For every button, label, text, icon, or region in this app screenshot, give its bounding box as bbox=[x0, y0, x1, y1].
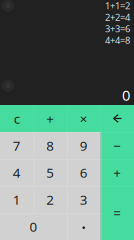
staticText: 7 bbox=[13, 137, 21, 154]
staticText: + bbox=[113, 164, 121, 181]
button[interactable]: × bbox=[67, 105, 100, 132]
staticText: 1+1=2 bbox=[105, 0, 130, 12]
button[interactable]: 3 bbox=[67, 186, 100, 213]
staticText: 1 bbox=[13, 191, 21, 208]
staticText: − bbox=[113, 137, 121, 154]
button[interactable]: 5 bbox=[33, 159, 67, 186]
staticText: 3+3=6 bbox=[105, 23, 130, 35]
staticText: 2+2=4 bbox=[105, 11, 130, 23]
button[interactable]: + bbox=[33, 105, 67, 132]
button[interactable]: Delete bbox=[100, 105, 134, 132]
button[interactable]: 1 bbox=[0, 186, 33, 213]
staticText: 0 bbox=[122, 85, 130, 105]
staticText: 4 bbox=[13, 164, 21, 181]
button[interactable]: 9 bbox=[67, 132, 100, 159]
staticText: + bbox=[46, 110, 54, 127]
button[interactable]: 6 bbox=[67, 159, 100, 186]
button[interactable]: Recent calculations bbox=[0, 78, 16, 94]
staticText: × bbox=[80, 110, 88, 127]
staticText: 0 bbox=[29, 218, 37, 235]
button[interactable]: Decimal point bbox=[67, 213, 100, 240]
staticText: 8 bbox=[46, 137, 54, 154]
staticText: c bbox=[14, 110, 20, 127]
staticText: 2 bbox=[46, 191, 54, 208]
button[interactable]: + bbox=[100, 159, 134, 186]
staticText: = bbox=[113, 204, 121, 222]
staticText: 5 bbox=[46, 164, 54, 181]
button[interactable]: 0 bbox=[0, 213, 67, 240]
staticText: 3 bbox=[80, 191, 88, 208]
button[interactable]: 2 bbox=[33, 186, 67, 213]
staticText: 9 bbox=[80, 137, 88, 154]
staticText: 4+4=8 bbox=[105, 34, 130, 46]
button[interactable]: 4 bbox=[0, 159, 33, 186]
button[interactable]: − bbox=[100, 132, 134, 159]
staticText: 6 bbox=[80, 164, 88, 181]
button[interactable]: = bbox=[100, 186, 134, 240]
button[interactable]: 8 bbox=[33, 132, 67, 159]
button[interactable]: 7 bbox=[0, 132, 33, 159]
button[interactable]: Back bbox=[0, 0, 16, 14]
button[interactable]: c bbox=[0, 105, 33, 132]
